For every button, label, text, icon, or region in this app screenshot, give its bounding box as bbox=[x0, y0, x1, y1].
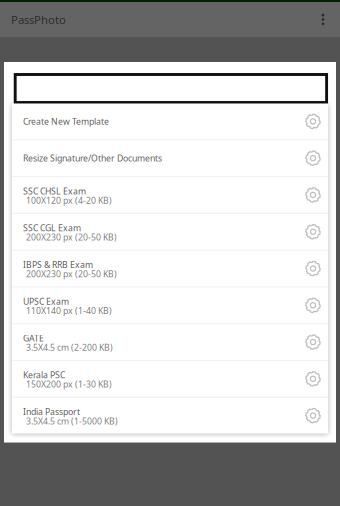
staticText: IBPS & RRB Exam bbox=[23, 259, 93, 270]
staticText: Resize Signature/Other Documents bbox=[23, 152, 162, 164]
staticText: UPSC Exam bbox=[23, 295, 69, 307]
button[interactable]: SSC CHSL Exam bbox=[12, 177, 328, 213]
staticText: 100X120 px (4-20 KB) bbox=[26, 194, 112, 206]
button[interactable]: IBPS & RRB Exam bbox=[12, 251, 328, 286]
staticText: 150X200 px (1-30 KB) bbox=[26, 378, 112, 390]
staticText: 3.5X4.5 cm (2-200 KB) bbox=[26, 342, 113, 353]
button[interactable]: SSC CGL Exam bbox=[12, 214, 328, 250]
staticText: 200X230 px (20-50 KB) bbox=[26, 268, 117, 280]
staticText: 200X230 px (20-50 KB) bbox=[26, 231, 117, 243]
button[interactable]: GATE bbox=[12, 324, 328, 360]
button[interactable]: UPSC Exam bbox=[12, 287, 328, 323]
staticText: Kerala PSC bbox=[23, 369, 65, 381]
staticText: Create New Template bbox=[23, 115, 109, 127]
staticText: 110X140 px (1-40 KB) bbox=[26, 305, 112, 317]
staticText: India Passport bbox=[23, 406, 80, 418]
staticText: SSC CGL Exam bbox=[23, 222, 81, 234]
staticText: 3.5X4.5 cm (1-5000 KB) bbox=[26, 415, 118, 427]
staticText: GATE bbox=[23, 332, 44, 344]
staticText: PassPhoto bbox=[11, 12, 66, 27]
button[interactable]: Resize Signature/Other Documents bbox=[12, 140, 328, 176]
staticText: SSC CHSL Exam bbox=[23, 185, 86, 197]
button[interactable]: More options bbox=[312, 2, 334, 36]
button[interactable]: Create New Template bbox=[12, 103, 328, 139]
button[interactable]: India Passport bbox=[12, 398, 328, 433]
button[interactable]: Kerala PSC bbox=[12, 361, 328, 397]
